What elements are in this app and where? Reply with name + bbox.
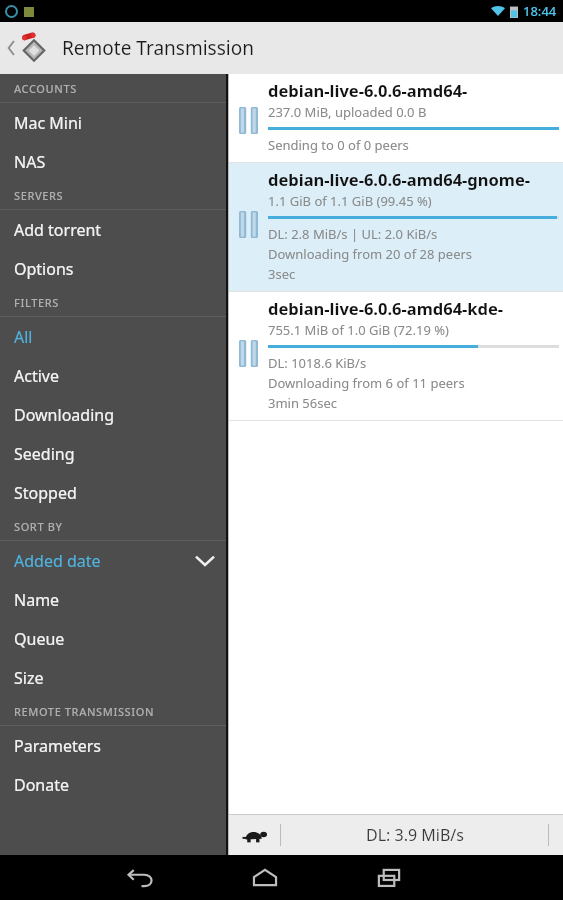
- staticText: debian-live-6.0.6-amd64-standard.iso: [268, 79, 559, 101]
- button[interactable]: Parameters: [0, 726, 228, 765]
- staticText: All: [14, 326, 33, 348]
- staticText: Parameters: [14, 735, 101, 757]
- staticText: Active: [14, 365, 59, 387]
- button[interactable]: Queue: [0, 619, 228, 658]
- staticText: Sending to 0 of 0 peers: [268, 136, 409, 154]
- staticText: Seeding: [14, 443, 75, 465]
- button[interactable]: Active: [0, 356, 228, 395]
- button[interactable]: NAS: [0, 142, 228, 181]
- staticText: REMOTE TRANSMISSION: [14, 704, 155, 719]
- button[interactable]: Mac Mini: [0, 103, 228, 142]
- staticText: Mac Mini: [14, 112, 82, 134]
- staticText: DL: 3.9 MiB/s: [366, 824, 464, 846]
- button[interactable]: Stopped: [0, 473, 228, 512]
- staticText: Name: [14, 589, 60, 611]
- staticText: 3sec: [268, 265, 296, 283]
- button[interactable]: Turtle mode: [228, 815, 280, 855]
- button[interactable]: Pause torrent: [235, 336, 262, 371]
- staticText: Donate: [14, 774, 70, 796]
- staticText: Size: [14, 667, 44, 689]
- staticText: Options: [14, 258, 74, 280]
- button[interactable]: Recent apps: [357, 855, 421, 900]
- staticText: 3min 56sec: [268, 394, 338, 412]
- staticText: DL: 1018.6 KiB/s: [268, 354, 367, 372]
- button[interactable]: Pause torrent: [228, 74, 563, 163]
- staticText: Remote Transmission: [62, 35, 254, 61]
- button[interactable]: Donate: [0, 765, 228, 804]
- button[interactable]: Home: [233, 855, 297, 900]
- staticText: Stopped: [14, 482, 77, 504]
- staticText: Downloading from 6 of 11 peers: [268, 374, 465, 392]
- button[interactable]: Pause torrent: [235, 103, 262, 138]
- staticText: SORT BY: [14, 519, 63, 534]
- button[interactable]: All: [0, 317, 228, 356]
- staticText: Add torrent: [14, 219, 102, 241]
- button[interactable]: Added date: [0, 541, 228, 580]
- staticText: DL: 2.8 MiB/s | UL: 2.0 KiB/s: [268, 225, 438, 243]
- button[interactable]: Back: [109, 855, 173, 900]
- button[interactable]: Downloading: [0, 395, 228, 434]
- staticText: 237.0 MiB, uploaded 0.0 B: [268, 103, 427, 121]
- staticText: debian-live-6.0.6-amd64-gnome-desktop: [268, 168, 559, 190]
- staticText: Queue: [14, 628, 65, 650]
- staticText: Downloading: [14, 404, 114, 426]
- button[interactable]: Name: [0, 580, 228, 619]
- button[interactable]: Seeding: [0, 434, 228, 473]
- button[interactable]: Pause torrent: [228, 292, 563, 421]
- button[interactable]: Size: [0, 658, 228, 697]
- staticText: FILTERS: [14, 295, 59, 310]
- staticText: 755.1 MiB of 1.0 GiB (72.19 %): [268, 321, 449, 339]
- staticText: 1.1 GiB of 1.1 GiB (99.45 %): [268, 192, 432, 210]
- staticText: SERVERS: [14, 188, 64, 203]
- button[interactable]: Add torrent: [0, 210, 228, 249]
- staticText: 18:44: [523, 2, 557, 20]
- button[interactable]: Pause torrent: [235, 207, 262, 242]
- button[interactable]: Pause torrent: [228, 163, 563, 292]
- staticText: Downloading from 20 of 28 peers: [268, 245, 473, 263]
- staticText: Added date: [14, 550, 101, 572]
- staticText: debian-live-6.0.6-amd64-kde-desktop: [268, 297, 559, 319]
- button[interactable]: Open navigation drawer: [6, 25, 52, 71]
- button[interactable]: Options: [0, 249, 228, 288]
- staticText: ACCOUNTS: [14, 81, 77, 96]
- staticText: NAS: [14, 151, 46, 173]
